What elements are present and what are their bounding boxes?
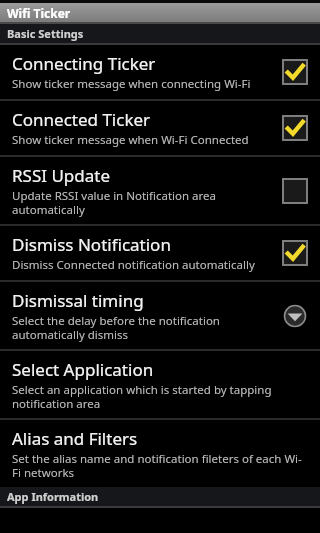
staticText: Show ticker message when connecting Wi-F…: [12, 76, 251, 92]
button[interactable]: Unchecked: [280, 176, 310, 206]
staticText: Select the delay before the notification…: [12, 313, 272, 342]
staticText: Wifi Ticker: [7, 5, 71, 21]
button[interactable]: Open dismissal timing options: [280, 301, 310, 331]
staticText: Select Application: [12, 358, 154, 381]
button[interactable]: Connected Ticker: [0, 101, 320, 155]
button[interactable]: Connecting Ticker: [0, 45, 320, 99]
button[interactable]: Checked: [280, 57, 310, 87]
button[interactable]: Dismiss Notification: [0, 226, 320, 280]
button[interactable]: Checked: [280, 113, 310, 143]
staticText: Set the alias name and notification file…: [12, 451, 310, 480]
staticText: Select an application which is started b…: [12, 382, 310, 411]
staticText: Show ticker message when Wi-Fi Connected: [12, 132, 249, 148]
staticText: Dismiss Connected notification automatic…: [12, 257, 255, 273]
button[interactable]: RSSI Update: [0, 157, 320, 224]
staticText: Update RSSI value in Notification area a…: [12, 188, 272, 217]
staticText: Basic Settings: [7, 26, 84, 41]
staticText: Alias and Filters: [12, 427, 138, 450]
button[interactable]: Checked: [280, 238, 310, 268]
staticText: Connecting Ticker: [12, 52, 156, 75]
staticText: Dismiss Notification: [12, 233, 171, 256]
button[interactable]: Alias and Filters: [0, 420, 320, 487]
staticText: App Information: [7, 489, 99, 504]
staticText: Connected Ticker: [12, 108, 151, 131]
button[interactable]: Select Application: [0, 351, 320, 418]
staticText: RSSI Update: [12, 164, 111, 187]
button[interactable]: Dismissal timing: [0, 282, 320, 349]
staticText: Dismissal timing: [12, 289, 144, 312]
